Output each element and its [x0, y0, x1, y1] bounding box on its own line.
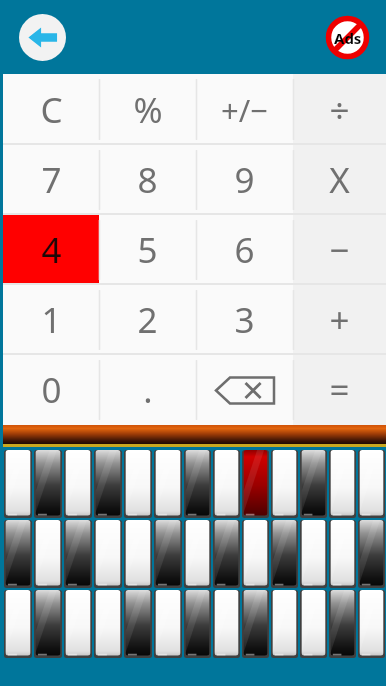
button[interactable]: ÷ — [293, 74, 386, 145]
button[interactable]: 2 — [99, 285, 196, 355]
button[interactable]: + — [293, 285, 386, 355]
button[interactable]: White key — [64, 590, 92, 658]
button[interactable]: +/− — [196, 74, 293, 145]
button[interactable]: White key — [271, 590, 298, 658]
staticText: +/− — [221, 89, 268, 131]
button[interactable]: Black key — [124, 590, 152, 658]
button[interactable]: White key — [329, 450, 356, 518]
button[interactable]: Black key — [300, 450, 327, 518]
button[interactable]: White key — [300, 520, 327, 588]
button[interactable]: White key — [358, 590, 385, 658]
button[interactable]: Black key — [34, 590, 62, 658]
button[interactable]: 5 — [99, 215, 196, 285]
button[interactable]: White key — [124, 520, 152, 588]
button[interactable]: Black key — [64, 520, 92, 588]
button[interactable]: White key — [271, 450, 298, 518]
staticText: 1 — [41, 296, 62, 344]
button[interactable]: White key — [154, 590, 182, 658]
staticText: 4 — [41, 226, 62, 274]
button[interactable]: Highlighted key — [242, 450, 269, 518]
staticText: + — [329, 296, 350, 344]
staticText: 0 — [41, 366, 62, 414]
button[interactable]: Black key — [271, 520, 298, 588]
button[interactable]: White key — [34, 520, 62, 588]
staticText: = — [329, 366, 350, 414]
button[interactable]: 0 — [3, 355, 99, 425]
staticText: C — [40, 86, 63, 134]
button[interactable]: White key — [329, 520, 356, 588]
button[interactable]: Black key — [154, 520, 182, 588]
button[interactable]: White key — [94, 520, 122, 588]
staticText: 5 — [137, 226, 158, 274]
staticText: 8 — [137, 156, 158, 204]
button[interactable] — [196, 355, 293, 425]
button[interactable]: Black key — [34, 450, 62, 518]
button[interactable]: White key — [213, 590, 240, 658]
staticText: 7 — [41, 156, 62, 204]
button[interactable]: White key — [213, 450, 240, 518]
button[interactable]: X — [293, 145, 386, 215]
button[interactable]: − — [293, 215, 386, 285]
button[interactable]: . — [99, 355, 196, 425]
button[interactable]: White key — [124, 450, 152, 518]
staticText: X — [329, 156, 350, 204]
staticText: 6 — [234, 226, 255, 274]
button[interactable]: Black key — [358, 520, 385, 588]
staticText: ÷ — [329, 86, 350, 134]
staticText: 3 — [234, 296, 255, 344]
button[interactable]: White key — [94, 590, 122, 658]
button[interactable]: White key — [242, 520, 269, 588]
staticText: Ads — [334, 28, 362, 48]
button[interactable]: Black key — [242, 590, 269, 658]
button[interactable]: White key — [154, 450, 182, 518]
button[interactable]: = — [293, 355, 386, 425]
button[interactable]: Remove ads — [325, 15, 370, 60]
button[interactable]: C — [3, 74, 99, 145]
button[interactable]: 9 — [196, 145, 293, 215]
button[interactable]: White key — [4, 590, 32, 658]
button[interactable]: 4 — [3, 215, 99, 285]
button[interactable]: White key — [4, 450, 32, 518]
button[interactable]: 3 — [196, 285, 293, 355]
staticText: . — [143, 366, 153, 414]
button[interactable]: % — [99, 74, 196, 145]
button[interactable]: 1 — [3, 285, 99, 355]
button[interactable]: White key — [300, 590, 327, 658]
button[interactable]: White key — [358, 450, 385, 518]
staticText: % — [133, 86, 163, 134]
button[interactable]: White key — [184, 520, 211, 588]
button[interactable]: Back — [19, 14, 66, 61]
button[interactable]: 7 — [3, 145, 99, 215]
button[interactable]: Black key — [329, 590, 356, 658]
button[interactable]: Black key — [213, 520, 240, 588]
staticText: 2 — [137, 296, 158, 344]
staticText: 9 — [234, 156, 255, 204]
button[interactable]: Black key — [94, 450, 122, 518]
button[interactable]: Black key — [4, 520, 32, 588]
staticText: − — [329, 226, 350, 274]
button[interactable]: 8 — [99, 145, 196, 215]
button[interactable]: White key — [64, 450, 92, 518]
button[interactable]: Black key — [184, 450, 211, 518]
button[interactable]: 6 — [196, 215, 293, 285]
button[interactable]: Black key — [184, 590, 211, 658]
